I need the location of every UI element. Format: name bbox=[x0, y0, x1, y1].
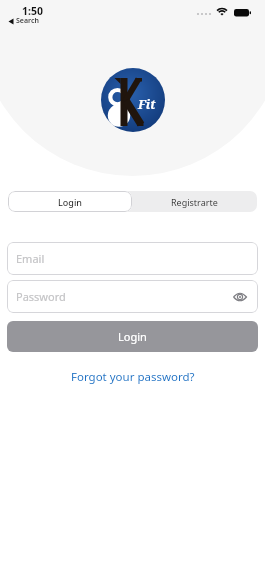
button[interactable]: Password bbox=[7, 280, 258, 313]
button[interactable]: Email bbox=[7, 242, 258, 275]
staticText: Login bbox=[58, 196, 82, 208]
staticText: 1:50 bbox=[22, 4, 43, 18]
staticText: Search bbox=[16, 16, 39, 26]
button[interactable]: Login bbox=[8, 191, 132, 212]
staticText: Fit bbox=[138, 96, 156, 113]
button[interactable]: Registrarte bbox=[132, 191, 257, 212]
staticText: Login bbox=[118, 329, 147, 344]
staticText: Email bbox=[16, 251, 45, 266]
staticText: Registrarte bbox=[171, 196, 218, 208]
button[interactable]: Forgot your password? bbox=[71, 369, 195, 385]
button[interactable]: Login bbox=[7, 321, 258, 352]
staticText: Password bbox=[16, 289, 66, 304]
